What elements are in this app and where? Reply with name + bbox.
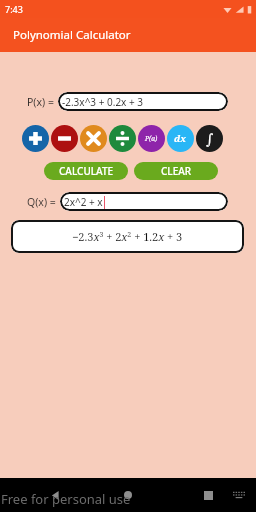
button[interactable]: -2.3x^3 + 0.2x + 3 bbox=[58, 92, 228, 111]
staticText: dx bbox=[174, 132, 187, 145]
staticText: -2.3x^3 + 0.2x + 3 bbox=[62, 95, 144, 109]
staticText: 2x^2 + x bbox=[64, 195, 103, 209]
staticText: 7:43 bbox=[5, 3, 23, 15]
button[interactable]: 2x^2 + x bbox=[60, 192, 228, 211]
staticText: CALCULATE bbox=[59, 164, 114, 178]
button[interactable]: Switch keyboard bbox=[229, 485, 249, 505]
button[interactable]: CALCULATE bbox=[44, 162, 128, 180]
staticText: P(x) = bbox=[27, 95, 54, 109]
staticText: CLEAR bbox=[161, 164, 192, 178]
button[interactable]: Evaluate at a bbox=[138, 125, 165, 152]
button[interactable]: Derivative bbox=[167, 125, 194, 152]
staticText: Polynomial Calculator bbox=[13, 27, 131, 43]
staticText: Free for personal use bbox=[1, 490, 131, 508]
button[interactable]: Integral bbox=[196, 125, 223, 152]
button[interactable]: CLEAR bbox=[134, 162, 218, 180]
button[interactable]: Back bbox=[44, 484, 66, 506]
button[interactable]: Recent apps bbox=[197, 484, 219, 506]
staticText: P(a) bbox=[145, 134, 158, 143]
button[interactable]: Add bbox=[22, 125, 49, 152]
button[interactable]: Subtract bbox=[51, 125, 78, 152]
button[interactable]: Multiply bbox=[80, 125, 107, 152]
button[interactable]: Divide bbox=[109, 125, 136, 152]
button[interactable]: Home bbox=[116, 483, 140, 507]
staticText: ∫ bbox=[206, 131, 214, 147]
staticText: Q(x) = bbox=[27, 195, 56, 209]
staticText: −2.3x3 + 2x2 + 1.2x + 3 bbox=[72, 229, 183, 244]
